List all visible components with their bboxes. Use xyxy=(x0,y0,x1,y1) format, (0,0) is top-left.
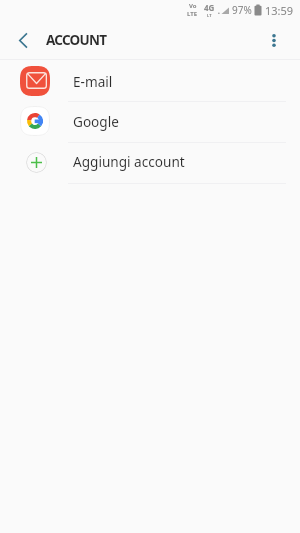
button[interactable]: Back xyxy=(0,21,46,59)
staticText: 13:59 xyxy=(265,3,294,18)
staticText: 97% xyxy=(232,3,252,17)
staticText: Vo xyxy=(189,2,197,10)
button[interactable]: E-mail xyxy=(0,61,300,101)
staticText: E-mail xyxy=(73,72,113,91)
button[interactable]: More options xyxy=(254,21,294,59)
staticText: LT xyxy=(207,13,212,18)
staticText: LTE xyxy=(187,10,198,18)
staticText: Google xyxy=(73,112,119,131)
staticText: Aggiungi account xyxy=(73,152,185,171)
button[interactable]: Aggiungi account xyxy=(0,141,300,181)
staticText: 4G xyxy=(204,2,215,13)
button[interactable]: Google xyxy=(0,101,300,141)
staticText: ACCOUNT xyxy=(46,31,107,49)
